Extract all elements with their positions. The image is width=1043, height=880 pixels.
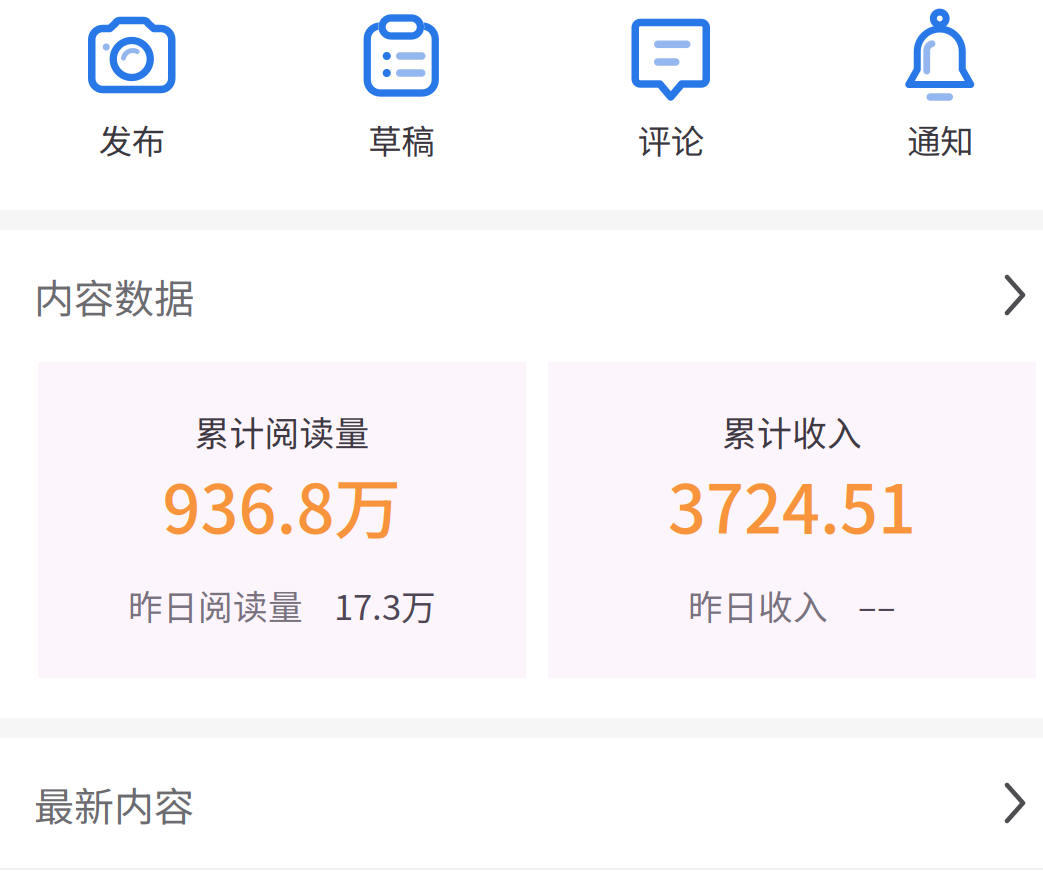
button[interactable]: 评论 — [536, 0, 805, 210]
staticText: 昨日收入 — [688, 580, 828, 630]
button[interactable]: 草稿 — [266, 0, 536, 210]
staticText: 936.8万 — [162, 456, 401, 553]
staticText: 3724.51 — [668, 456, 916, 553]
staticText: 内容数据 — [34, 267, 194, 325]
staticText: 评论 — [638, 115, 704, 163]
button[interactable]: 发布 — [0, 0, 266, 210]
staticText: 发布 — [99, 115, 165, 163]
staticText: 草稿 — [368, 115, 434, 163]
staticText: 最新内容 — [34, 775, 194, 833]
staticText: –– — [858, 580, 896, 630]
staticText: 17.3万 — [334, 580, 436, 630]
staticText: 昨日阅读量 — [128, 580, 303, 630]
button[interactable]: 通知 — [805, 0, 1043, 210]
staticText: 通知 — [907, 115, 973, 163]
button[interactable]: 最新内容 — [0, 738, 1043, 870]
staticText: 累计阅读量 — [194, 406, 369, 456]
button[interactable]: 内容数据 — [0, 230, 1043, 362]
staticText: 累计收入 — [722, 406, 862, 456]
